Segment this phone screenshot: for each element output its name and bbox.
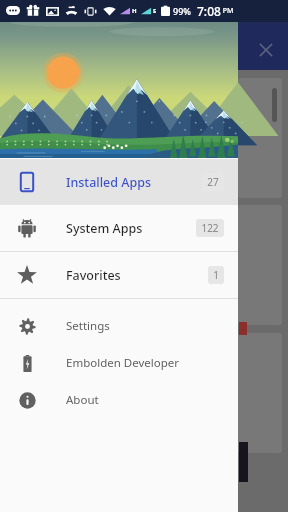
staticText: 7:08 xyxy=(197,3,221,19)
button[interactable]: Settings xyxy=(0,307,238,344)
staticText: E xyxy=(153,7,157,15)
staticText: Installed Apps xyxy=(66,174,151,191)
staticText: H xyxy=(132,7,137,15)
staticText: 122 xyxy=(201,221,219,235)
button[interactable]: About xyxy=(0,381,238,418)
staticText: System Apps xyxy=(66,220,143,237)
staticText: Settings xyxy=(66,318,110,334)
staticText: 1 xyxy=(213,268,219,282)
staticText: 99% xyxy=(173,5,191,17)
staticText: 27 xyxy=(207,175,219,189)
staticText: About xyxy=(66,392,99,408)
staticText: PM xyxy=(221,6,234,16)
staticText: Embolden Developer xyxy=(66,355,180,371)
staticText: Favorites xyxy=(66,267,121,284)
button[interactable]: System Apps xyxy=(0,205,238,251)
button[interactable]: Embolden Developer xyxy=(0,344,238,381)
button[interactable]: Favorites xyxy=(0,252,238,298)
button[interactable]: Installed Apps xyxy=(0,159,238,205)
button[interactable]: Close xyxy=(252,36,280,64)
